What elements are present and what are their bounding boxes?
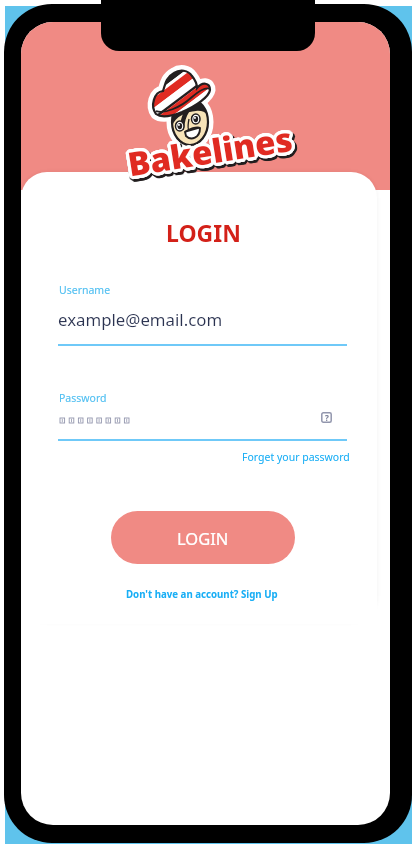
staticText: Bakelines: [124, 117, 295, 187]
staticText: Bakelines: [125, 115, 296, 185]
staticText: Bakelines: [125, 118, 296, 188]
staticText: Bakelines: [130, 116, 301, 186]
staticText: Bakelines: [126, 117, 297, 187]
staticText: Forget your password: [242, 450, 350, 464]
staticText: Bakelines: [127, 115, 298, 186]
staticText: Bakelines: [125, 118, 296, 188]
staticText: Bakelines: [124, 119, 295, 189]
staticText: Password: [59, 391, 107, 405]
staticText: Bakelines: [126, 116, 297, 186]
staticText: Bakelines: [124, 113, 295, 183]
staticText: Bakelines: [124, 116, 295, 186]
staticText: Don't have an account? Sign Up: [126, 588, 278, 601]
staticText: Bakelines: [126, 118, 297, 188]
staticText: Bakelines: [125, 119, 296, 189]
staticText: Bakelines: [123, 117, 294, 188]
staticText: Bakelines: [124, 116, 295, 186]
staticText: Bakelines: [128, 119, 299, 190]
staticText: Bakelines: [123, 118, 294, 189]
staticText: Bakelines: [121, 115, 292, 186]
button[interactable]: Toggle password visibility: [316, 407, 336, 427]
staticText: Bakelines: [126, 114, 297, 184]
staticText: Bakelines: [128, 116, 299, 187]
staticText: Bakelines: [126, 114, 297, 184]
staticText: Bakelines: [125, 114, 296, 184]
staticText: Bakelines: [124, 114, 295, 184]
staticText: Bakelines: [122, 116, 293, 187]
staticText: Bakelines: [122, 116, 293, 187]
staticText: Bakelines: [126, 118, 297, 188]
staticText: Bakelines: [129, 118, 300, 189]
staticText: Bakelines: [123, 114, 294, 184]
staticText: Bakelines: [123, 113, 294, 183]
staticText: Bakelines: [123, 118, 294, 189]
staticText: Bakelines: [128, 117, 299, 188]
staticText: ?: [325, 412, 329, 423]
staticText: Bakelines: [125, 120, 296, 190]
staticText: Bakelines: [127, 114, 298, 185]
staticText: Bakelines: [122, 117, 293, 188]
staticText: Bakelines: [124, 120, 295, 190]
staticText: Bakelines: [128, 118, 299, 189]
staticText: Bakelines: [128, 116, 299, 187]
staticText: Bakelines: [123, 117, 294, 188]
staticText: Bakelines: [129, 116, 300, 187]
staticText: Bakelines: [127, 118, 298, 188]
staticText: Bakelines: [129, 119, 300, 190]
staticText: Bakelines: [127, 114, 298, 185]
staticText: Bakelines: [125, 121, 296, 191]
staticText: Bakelines: [130, 117, 301, 187]
staticText: Bakelines: [126, 115, 297, 185]
button[interactable]: LOGIN: [111, 511, 295, 564]
staticText: Bakelines: [127, 118, 298, 188]
staticText: Bakelines: [122, 118, 293, 189]
staticText: Bakelines: [126, 122, 297, 192]
staticText: LOGIN: [166, 217, 241, 248]
staticText: Bakelines: [122, 114, 293, 185]
staticText: Bakelines: [122, 115, 293, 186]
staticText: Bakelines: [124, 118, 295, 188]
staticText: Bakelines: [126, 117, 297, 187]
staticText: Bakelines: [123, 116, 294, 186]
staticText: Bakelines: [130, 118, 301, 188]
button[interactable]: Forget your password: [240, 448, 352, 466]
staticText: Bakelines: [123, 120, 294, 191]
staticText: Bakelines: [126, 119, 297, 189]
staticText: LOGIN: [177, 527, 229, 549]
staticText: Bakelines: [127, 117, 298, 187]
staticText: Bakelines: [126, 121, 297, 191]
staticText: Bakelines: [125, 113, 296, 183]
staticText: Bakelines: [126, 116, 297, 186]
staticText: Bakelines: [123, 115, 294, 185]
staticText: Bakelines: [124, 118, 295, 188]
staticText: Bakelines: [126, 115, 297, 185]
staticText: Bakelines: [123, 119, 294, 190]
staticText: Bakelines: [127, 121, 298, 192]
staticText: Bakelines: [125, 117, 296, 187]
staticText: Bakelines: [125, 115, 296, 185]
staticText: Bakelines: [125, 117, 296, 187]
staticText: Bakelines: [122, 117, 293, 188]
staticText: Bakelines: [127, 119, 298, 189]
staticText: Bakelines: [124, 121, 295, 191]
staticText: example@email.com: [58, 308, 223, 331]
button[interactable]: Don't have an account? Sign Up: [124, 586, 280, 603]
staticText: Bakelines: [125, 114, 296, 184]
staticText: Bakelines: [127, 120, 298, 190]
staticText: Bakelines: [124, 117, 295, 187]
staticText: Bakelines: [129, 117, 300, 188]
staticText: Bakelines: [125, 116, 296, 186]
staticText: Bakelines: [128, 115, 299, 186]
staticText: Bakelines: [127, 121, 298, 191]
staticText: Bakelines: [123, 116, 294, 186]
staticText: Bakelines: [124, 119, 295, 189]
staticText: Bakelines: [126, 120, 297, 190]
staticText: Bakelines: [123, 115, 294, 185]
staticText: Bakelines: [126, 119, 297, 189]
staticText: Username: [59, 283, 111, 297]
staticText: Bakelines: [127, 117, 298, 187]
staticText: Bakelines: [124, 114, 295, 184]
staticText: Bakelines: [124, 115, 295, 185]
staticText: Bakelines: [125, 116, 296, 186]
staticText: Bakelines: [125, 122, 296, 192]
